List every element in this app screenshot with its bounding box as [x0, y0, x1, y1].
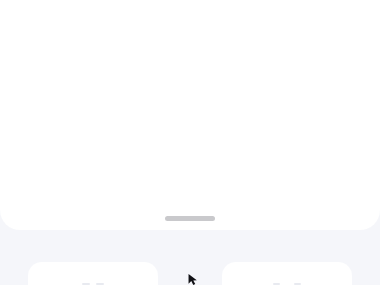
button[interactable]: Drag handle [165, 216, 215, 221]
